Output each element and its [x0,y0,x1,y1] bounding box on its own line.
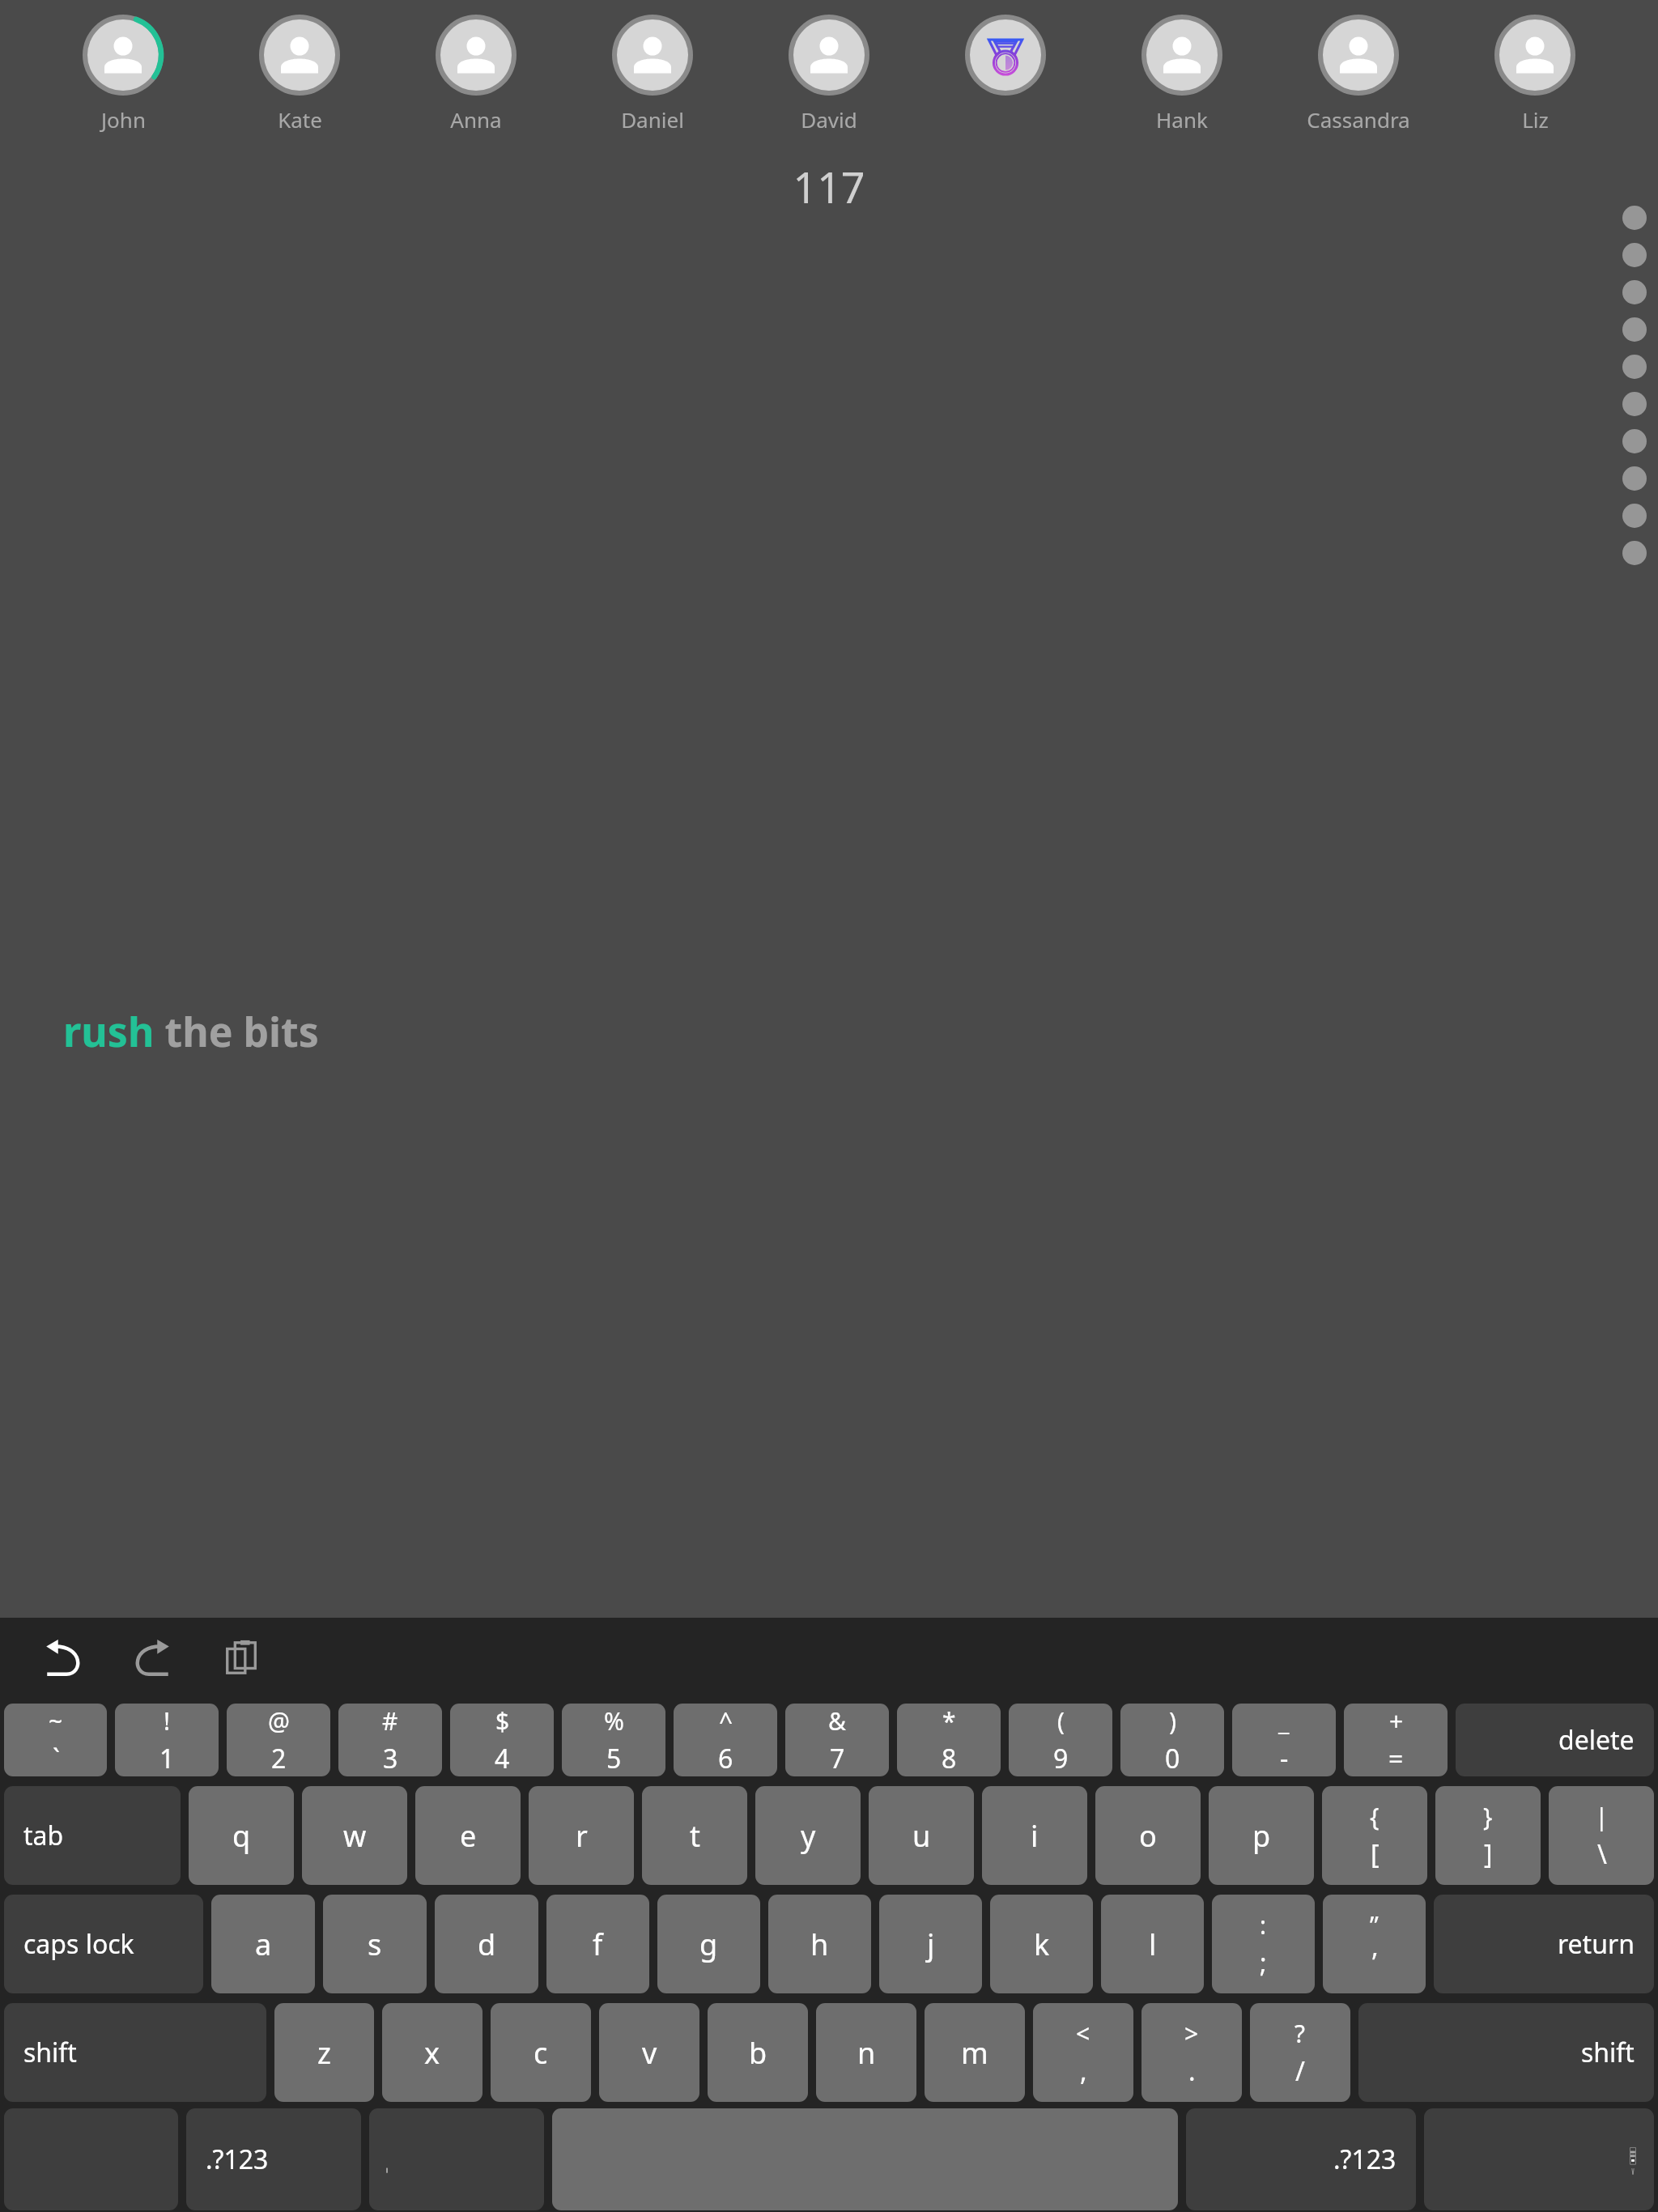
button[interactable]: ( [1009,1704,1112,1776]
staticText: 117 [0,158,1658,215]
button[interactable]: Redo [121,1627,183,1689]
button[interactable]: y [755,1786,861,1885]
staticText: y [801,1816,816,1856]
staticText: 7 [830,1741,845,1776]
button[interactable]: c [491,2003,591,2102]
staticText: * [942,1704,956,1738]
staticText: c [534,2033,548,2073]
button[interactable]: a [211,1895,315,1993]
button[interactable]: p [1209,1786,1314,1885]
button[interactable]: q [189,1786,294,1885]
button[interactable]: ) [1120,1704,1224,1776]
staticText: x [424,2033,440,2073]
button[interactable]: Hank [1129,15,1235,134]
button[interactable]: caps lock [4,1895,203,1993]
button[interactable]: ~ [4,1704,107,1776]
button[interactable]: Voice input [369,2108,544,2210]
button[interactable]: u [869,1786,974,1885]
button[interactable] [552,2108,1178,2210]
staticText: i [1031,1816,1039,1856]
button[interactable]: d [435,1895,538,1993]
button[interactable]: shift [1358,2003,1654,2102]
button[interactable]: s [323,1895,427,1993]
button[interactable]: k [990,1895,1093,1993]
staticText: 3 [383,1741,398,1776]
button[interactable]: return [1434,1895,1654,1993]
button[interactable]: : [1212,1895,1315,1993]
staticText: n [857,2033,876,2073]
button[interactable]: v [599,2003,699,2102]
button[interactable]: g [657,1895,760,1993]
staticText: Kate [278,105,322,134]
staticText: _ [1278,1704,1290,1738]
button[interactable]: b [708,2003,808,2102]
button[interactable]: tab [4,1786,181,1885]
button[interactable]: + [1344,1704,1448,1776]
button[interactable]: { [1322,1786,1427,1885]
button[interactable]: .?123 [186,2108,361,2210]
button[interactable]: @ [227,1704,330,1776]
button[interactable]: ! [115,1704,219,1776]
staticText: ” [1370,1908,1379,1942]
button[interactable]: Emoji [4,2108,178,2210]
staticText: + [1389,1704,1404,1738]
button[interactable]: _ [1232,1704,1336,1776]
button[interactable]: x [382,2003,483,2102]
button[interactable] [952,15,1059,134]
button[interactable]: z [274,2003,374,2102]
staticText: v [642,2033,657,2073]
staticText: delete [1558,1722,1635,1758]
button[interactable]: | [1549,1786,1654,1885]
button[interactable]: r [529,1786,634,1885]
button[interactable]: > [1141,2003,1242,2102]
button[interactable]: i [982,1786,1087,1885]
staticText: ` [53,1741,60,1776]
button[interactable]: shift [4,2003,266,2102]
button[interactable]: Kate [246,15,353,134]
button[interactable]: Paste [210,1627,272,1689]
button[interactable]: # [338,1704,442,1776]
button[interactable]: .?123 [1186,2108,1416,2210]
staticText: rush the bits [63,1004,319,1059]
button[interactable]: j [879,1895,982,1993]
staticText: shift [23,2035,77,2070]
staticText: ? [1295,2017,1306,2050]
button[interactable]: Hide keyboard [1424,2108,1654,2210]
button[interactable]: f [546,1895,649,1993]
button[interactable]: % [562,1704,665,1776]
button[interactable]: Cassandra [1305,15,1412,134]
button[interactable]: < [1033,2003,1133,2102]
button[interactable]: n [816,2003,916,2102]
button[interactable]: ” [1323,1895,1426,1993]
staticText: s [368,1925,382,1964]
button[interactable]: Liz [1482,15,1588,134]
staticText: caps lock [23,1926,134,1962]
button[interactable]: delete [1456,1704,1654,1776]
button[interactable]: Anna [423,15,529,134]
staticText: m [961,2033,988,2073]
staticText: p [1252,1816,1271,1856]
staticText: e [460,1816,477,1856]
staticText: ) [1169,1704,1176,1738]
staticText: Hank [1156,105,1208,134]
button[interactable]: $ [450,1704,554,1776]
button[interactable]: w [302,1786,407,1885]
button[interactable]: John [70,15,176,134]
staticText: z [317,2033,331,2073]
button[interactable]: ? [1250,2003,1350,2102]
button[interactable]: t [642,1786,747,1885]
staticText: & [828,1704,846,1738]
button[interactable]: ^ [674,1704,777,1776]
button[interactable]: o [1095,1786,1201,1885]
staticText: 1 [159,1741,175,1776]
button[interactable]: } [1435,1786,1541,1885]
button[interactable]: & [785,1704,889,1776]
button[interactable]: m [925,2003,1025,2102]
button[interactable]: e [415,1786,521,1885]
button[interactable]: * [897,1704,1001,1776]
button[interactable]: Undo [32,1627,94,1689]
button[interactable]: h [768,1895,871,1993]
button[interactable]: David [776,15,882,134]
button[interactable]: Daniel [599,15,706,134]
button[interactable]: l [1101,1895,1204,1993]
